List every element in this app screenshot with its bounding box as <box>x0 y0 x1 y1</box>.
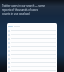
button[interactable] <box>7 45 57 48</box>
button[interactable] <box>7 37 57 40</box>
staticText: Twitter users in our search — some <box>2 4 46 8</box>
button[interactable] <box>7 53 57 56</box>
button[interactable] <box>7 33 57 36</box>
button[interactable] <box>7 57 57 60</box>
staticText: counts in use caseload <box>2 12 30 16</box>
button[interactable] <box>7 29 57 32</box>
button[interactable] <box>7 69 57 72</box>
button[interactable] <box>7 41 57 44</box>
button[interactable] <box>7 61 57 64</box>
button[interactable] <box>7 49 57 52</box>
staticText: reports of thousands of cases <box>2 8 39 12</box>
button[interactable] <box>7 25 57 28</box>
button[interactable] <box>7 65 57 68</box>
